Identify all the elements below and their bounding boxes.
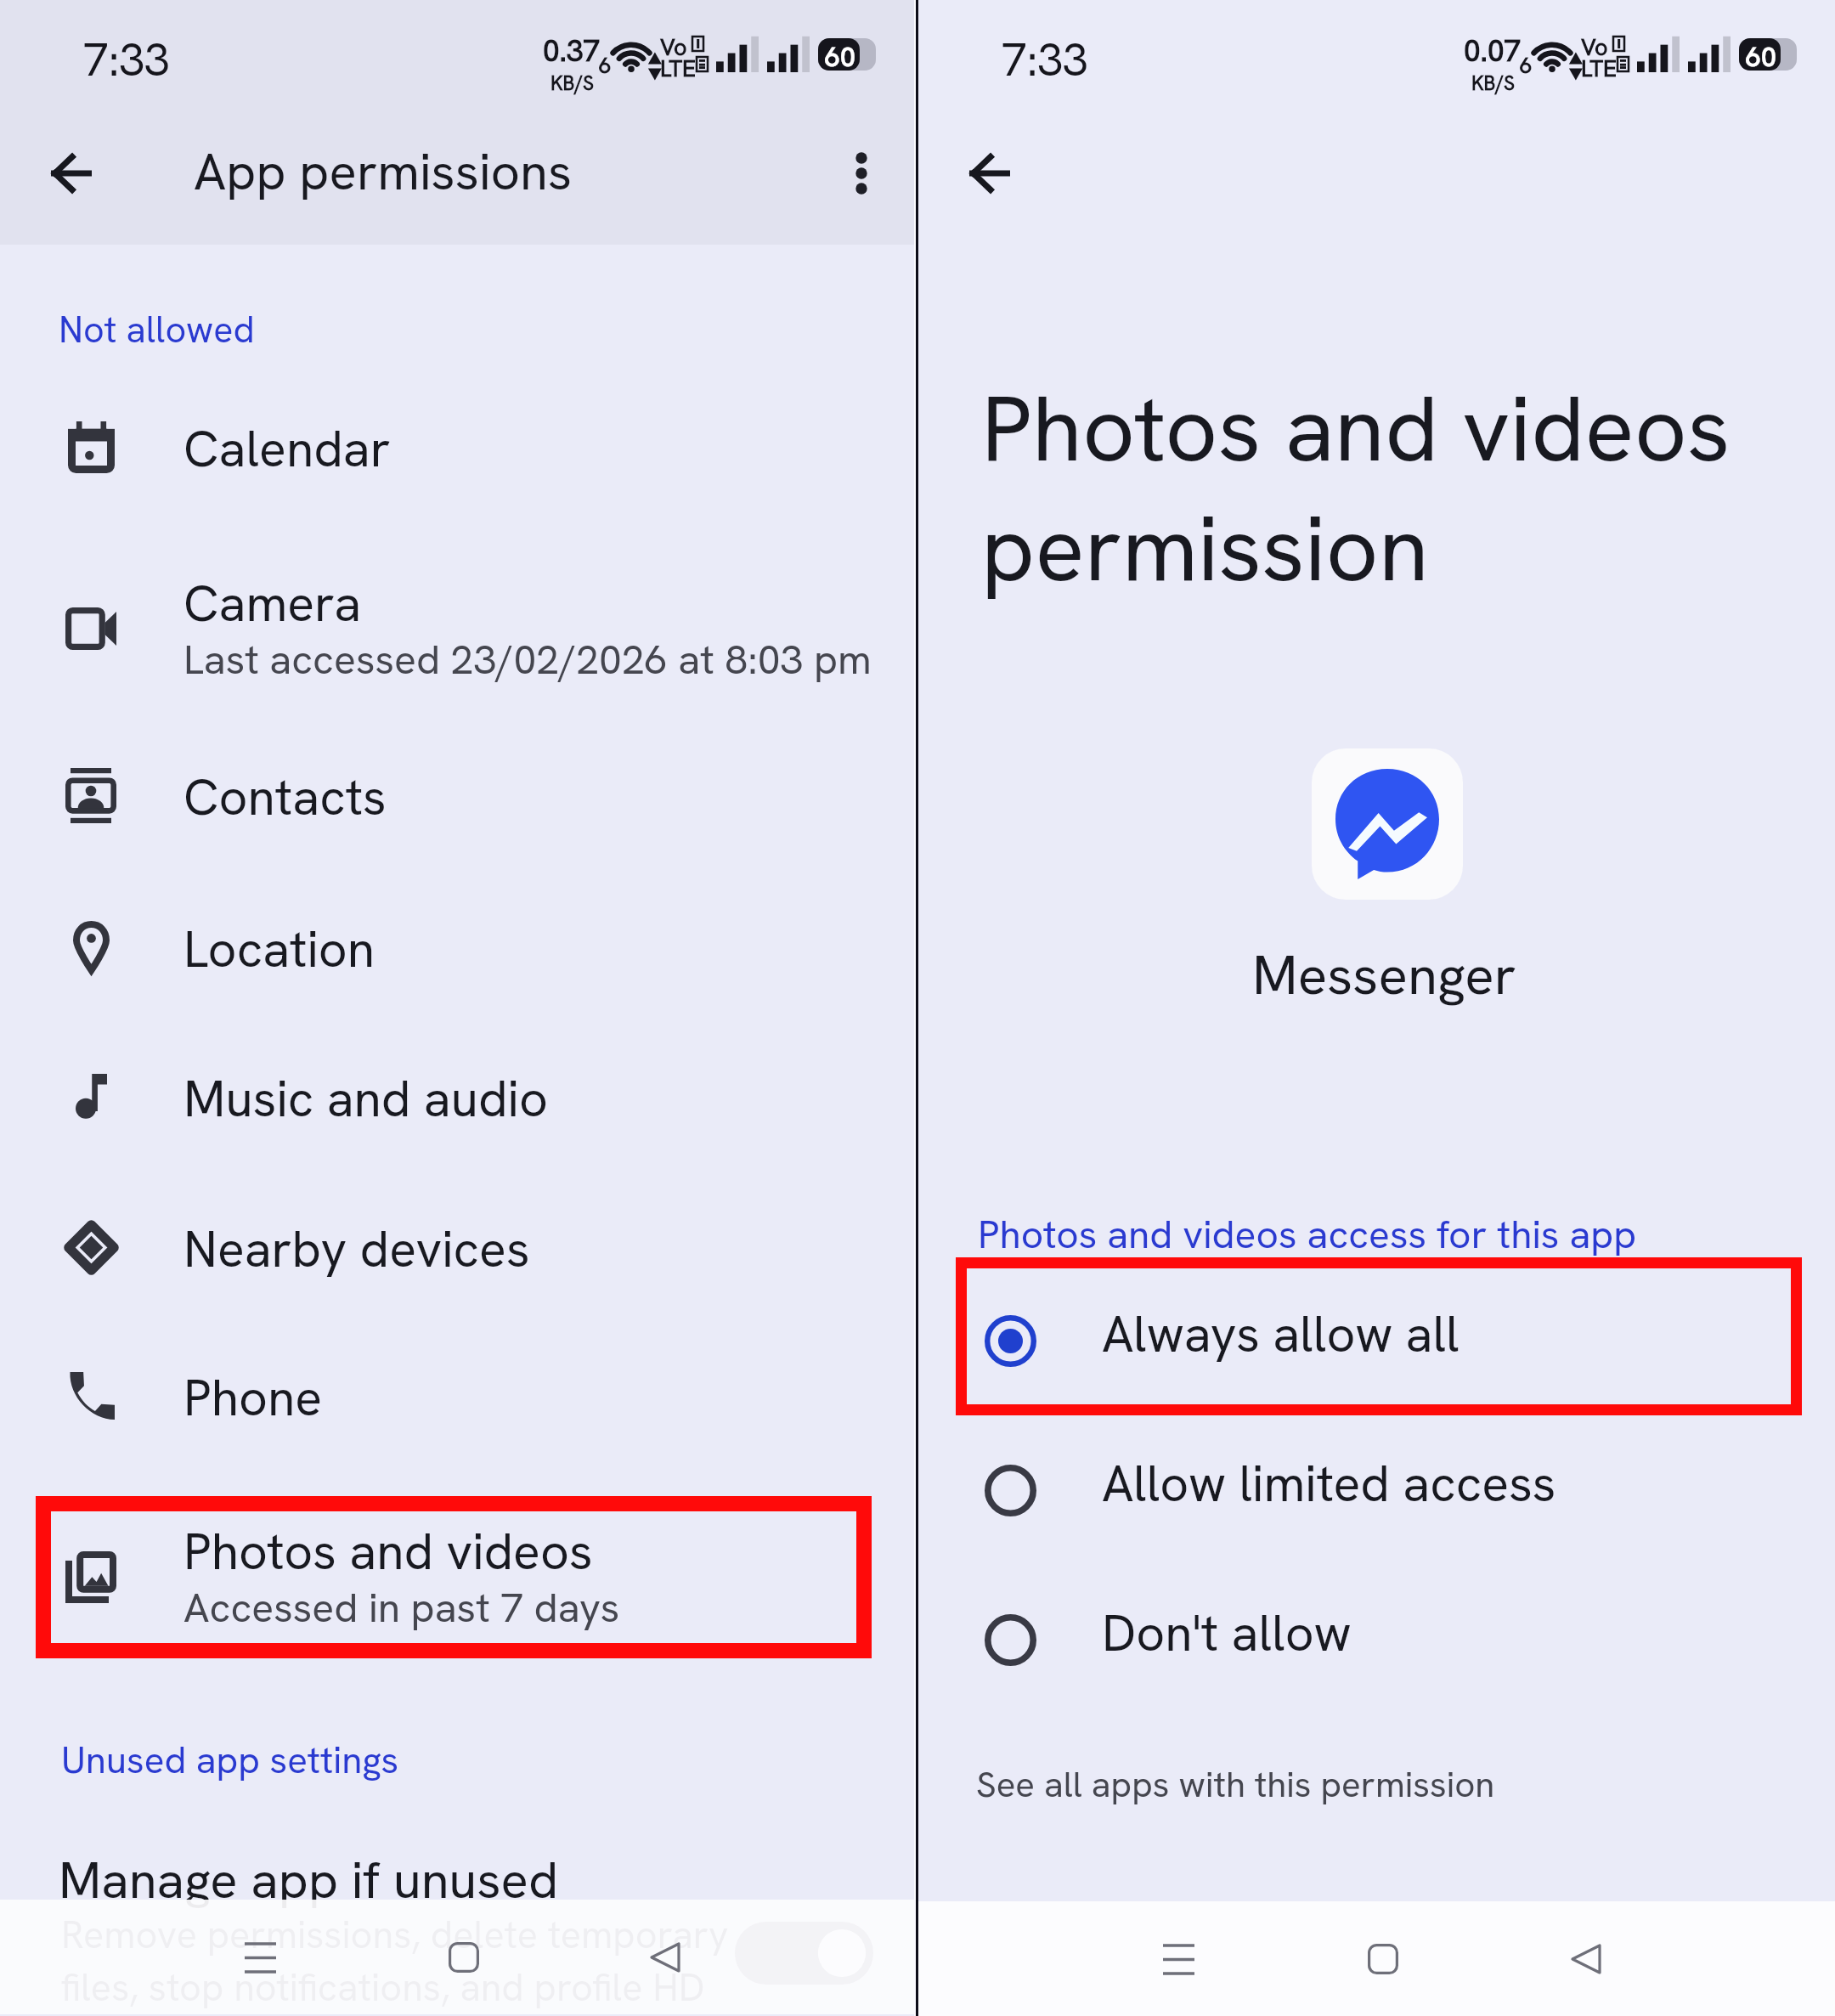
staticText: Music and audio [183, 1066, 548, 1132]
staticText: Camera [183, 571, 362, 636]
staticText: 60 [1746, 39, 1776, 71]
staticText: Location [183, 917, 375, 982]
button[interactable]: Location [0, 895, 914, 1044]
staticText: Allow limited access [1102, 1451, 1556, 1516]
staticText: Photos and videos [183, 1519, 593, 1584]
staticText: Messenger [1252, 940, 1516, 1010]
staticText: LTE [660, 54, 696, 83]
button[interactable]: Recent apps [207, 1905, 313, 2010]
button[interactable]: Back [27, 129, 116, 217]
button[interactable]: Don't allow [918, 1565, 1835, 1714]
button[interactable]: Back [613, 1905, 718, 2010]
staticText: Contacts [183, 765, 387, 830]
button[interactable]: Home [411, 1905, 517, 2010]
staticText: Not allowed [59, 306, 255, 353]
button[interactable]: Home [1330, 1906, 1436, 2012]
staticText: Always allow all [1102, 1302, 1460, 1367]
staticText: KB/S [1471, 71, 1515, 96]
staticText: Accessed in past 7 days [183, 1581, 620, 1635]
button[interactable]: Nearby devices [0, 1194, 914, 1344]
staticText: 60 [825, 39, 855, 71]
button[interactable]: More options [817, 129, 906, 217]
button[interactable]: Calendar [0, 394, 914, 544]
staticText: 6 [1520, 51, 1533, 80]
button[interactable]: See all apps with this permission [976, 1761, 1495, 1808]
staticText: Don't allow [1102, 1601, 1352, 1666]
staticText: Calendar [183, 416, 391, 482]
staticText: 0.07 [1464, 31, 1522, 71]
button[interactable]: Contacts [0, 743, 914, 892]
button[interactable]: Back [1533, 1906, 1639, 2012]
staticText: Last accessed 23/02/2026 at 8:03 pm [183, 633, 872, 686]
staticText: 7:33 [83, 31, 170, 89]
staticText: 7:33 [1002, 31, 1088, 89]
staticText: Unused app settings [61, 1736, 399, 1784]
button[interactable]: Camera [0, 549, 914, 711]
button[interactable]: Music and audio [0, 1044, 914, 1194]
button[interactable]: Back [946, 129, 1034, 217]
staticText: Manage app if unused [59, 1847, 559, 1913]
button[interactable]: Recent apps [1126, 1906, 1231, 2012]
staticText: 0.37 [543, 31, 601, 71]
staticText: Remove permissions, delete temporary fil… [61, 1910, 729, 2012]
staticText: 6 [599, 51, 612, 80]
staticText: Vo [660, 32, 687, 62]
staticText: Nearby devices [183, 1217, 530, 1282]
staticText: Photos and videos access for this app [978, 1209, 1637, 1260]
staticText: LTE [1581, 54, 1617, 83]
button[interactable]: Allow limited access [918, 1415, 1835, 1565]
staticText: App permissions [194, 138, 573, 205]
staticText: KB/S [550, 71, 594, 96]
staticText: Photos and videos permission [981, 369, 1788, 608]
button[interactable]: Phone [0, 1343, 914, 1493]
button[interactable]: Manage app if unused [0, 1828, 914, 2016]
staticText: Phone [183, 1365, 323, 1431]
staticText: Vo [1581, 32, 1608, 62]
button[interactable]: Always allow all [918, 1266, 1835, 1415]
button[interactable]: Photos and videos [0, 1497, 914, 1659]
